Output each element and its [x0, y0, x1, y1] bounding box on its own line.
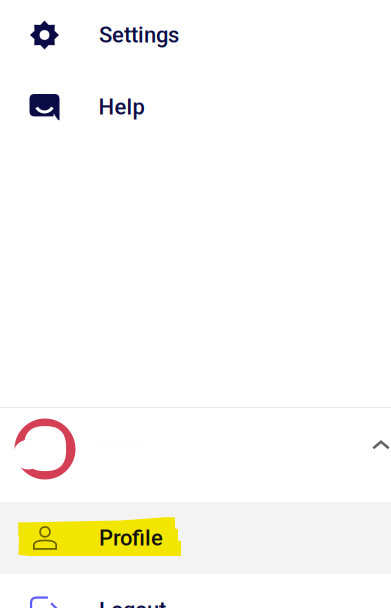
button[interactable]: Settings	[0, 0, 391, 71]
button[interactable]: Help	[0, 71, 391, 143]
staticText: Logout	[99, 597, 166, 608]
staticText: Help	[98, 94, 144, 120]
button[interactable]: Logout	[0, 574, 391, 608]
button[interactable]: Account	[0, 408, 391, 503]
button[interactable]: Profile	[0, 502, 391, 574]
staticText: Profile	[99, 525, 163, 551]
staticText: Settings	[99, 22, 179, 48]
